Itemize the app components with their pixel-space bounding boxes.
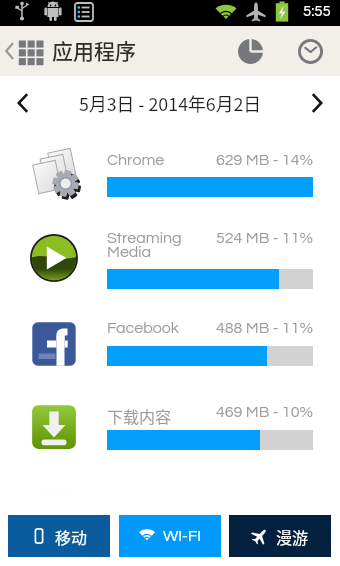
staticText: 629 MB - 14% bbox=[216, 152, 313, 168]
staticText: 下载内容 bbox=[107, 404, 172, 427]
button[interactable]: Mobile data bbox=[8, 515, 110, 557]
staticText: 469 MB - 10% bbox=[216, 404, 313, 420]
button[interactable]: Data usage chart bbox=[234, 26, 266, 76]
button[interactable]: Roaming data bbox=[229, 515, 331, 557]
staticText: Chrome bbox=[107, 152, 165, 168]
staticText: WI-FI bbox=[163, 528, 202, 544]
button[interactable]: Previous period bbox=[4, 76, 42, 130]
button[interactable] bbox=[0, 400, 340, 450]
button[interactable] bbox=[0, 147, 340, 197]
staticText: 488 MB - 11% bbox=[216, 320, 313, 336]
button[interactable]: Next period bbox=[298, 76, 336, 130]
staticText: Streaming bbox=[107, 230, 182, 246]
button[interactable]: 应用程序 bbox=[0, 26, 200, 76]
button[interactable]: History bbox=[294, 26, 326, 76]
staticText: Facebook bbox=[107, 320, 179, 336]
staticText: Media bbox=[107, 244, 152, 260]
button[interactable] bbox=[0, 223, 340, 289]
staticText: 应用程序 bbox=[52, 35, 136, 65]
staticText: 漫游 bbox=[276, 525, 309, 548]
staticText: 移动 bbox=[55, 525, 88, 548]
staticText: 5月3日 - 2014年6月2日 bbox=[79, 90, 262, 116]
staticText: 524 MB - 11% bbox=[216, 230, 313, 246]
button[interactable]: Wi-Fi data bbox=[119, 515, 221, 557]
staticText: 5:55 bbox=[303, 4, 331, 19]
button[interactable] bbox=[0, 316, 340, 366]
